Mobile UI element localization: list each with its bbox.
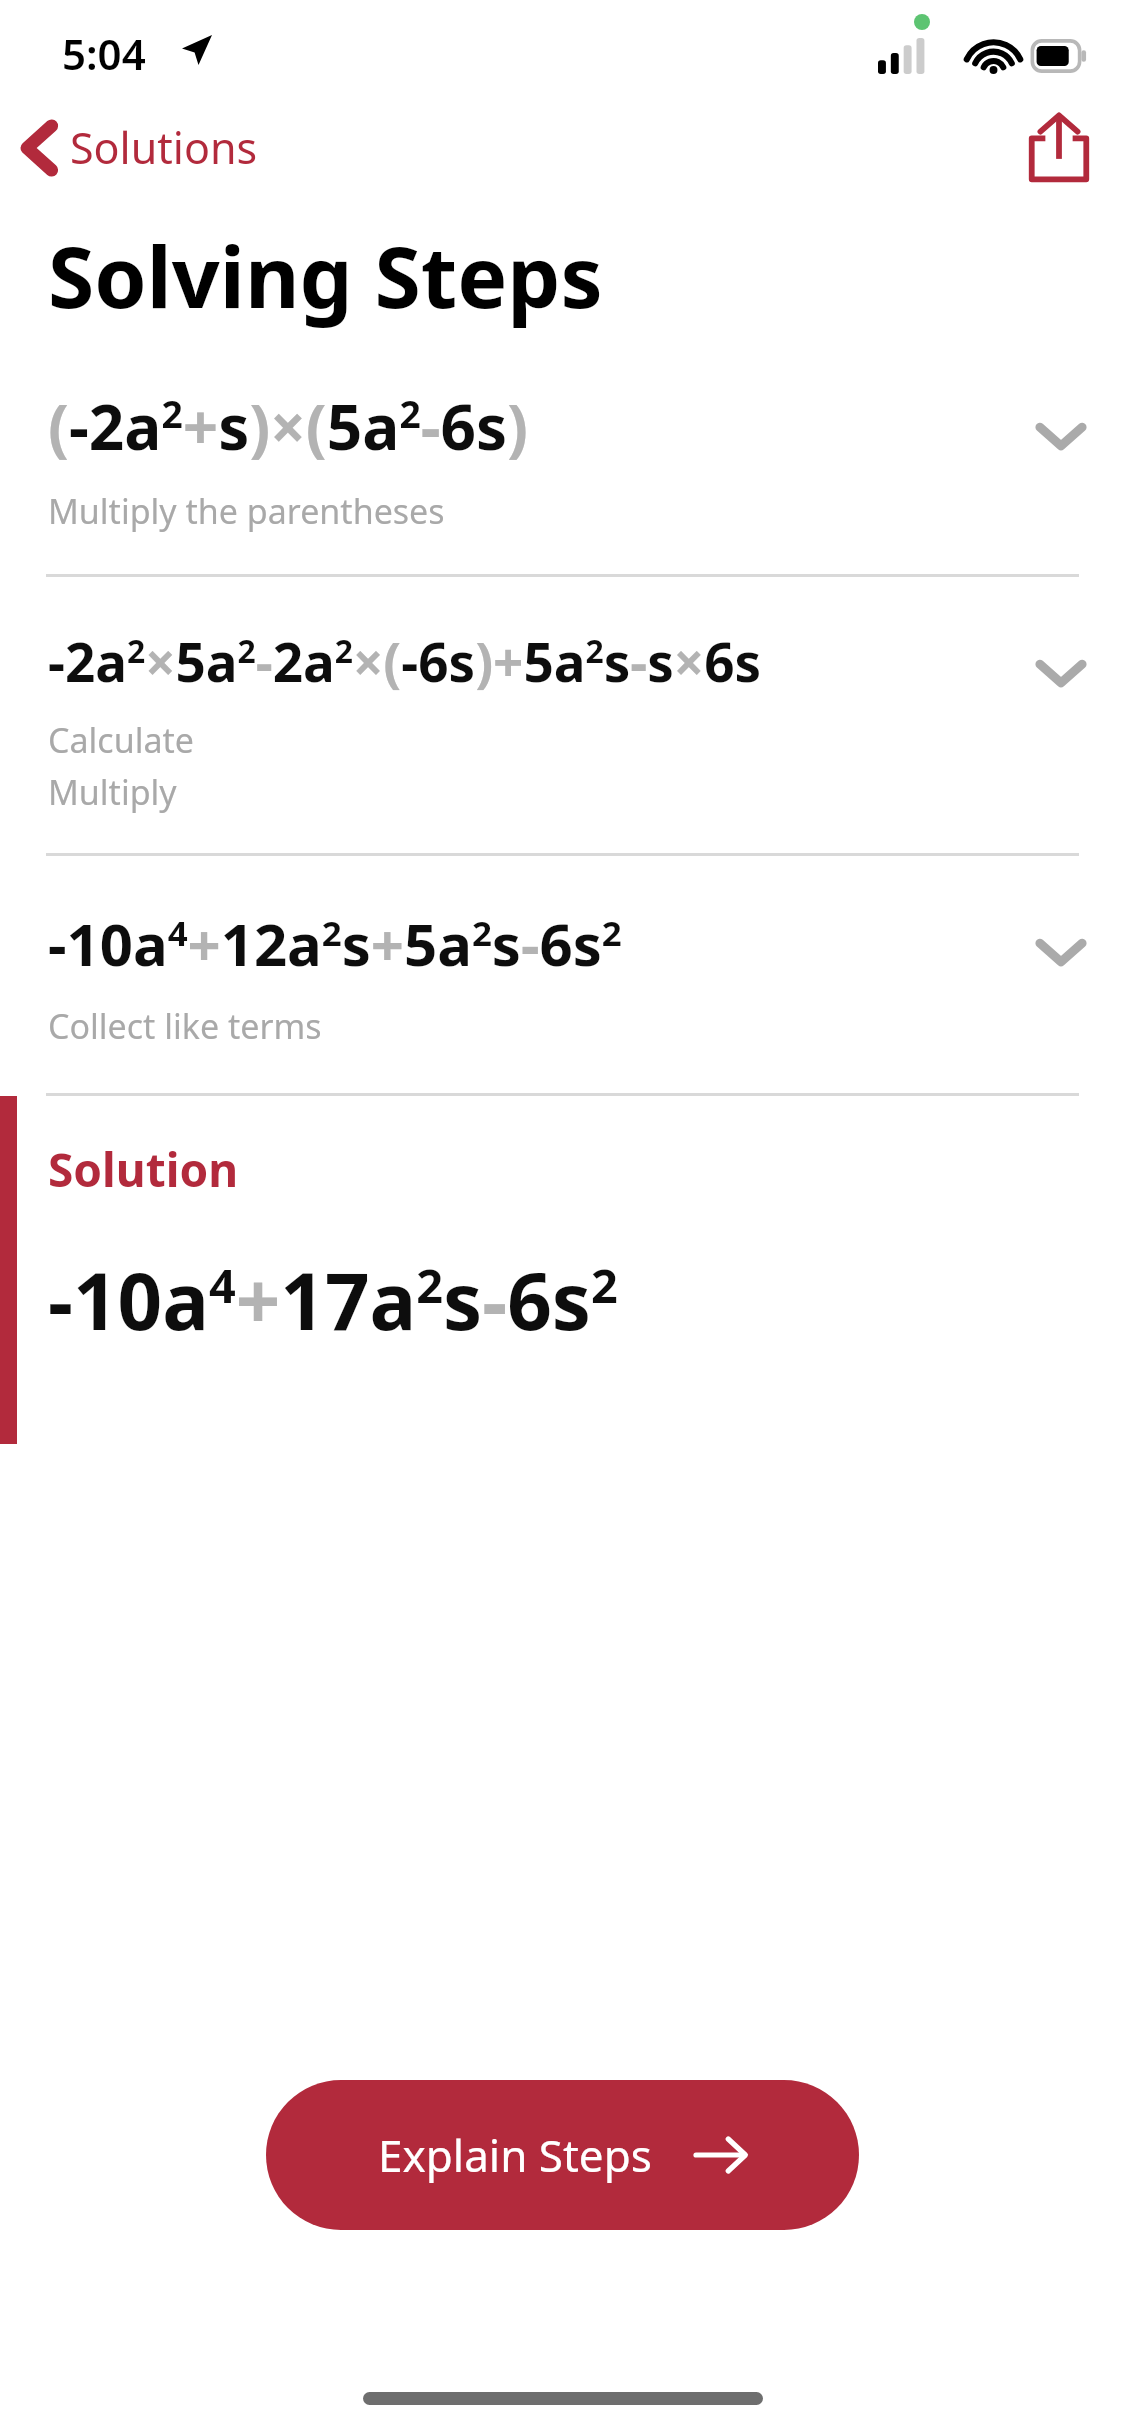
button[interactable]: Explain Steps bbox=[266, 2080, 859, 2230]
staticText: Solving Steps bbox=[48, 218, 603, 332]
staticText: -2a2×5a2-2a2×(-6s)+5a2s-s×6s bbox=[48, 625, 762, 697]
button[interactable]: Share bbox=[1011, 100, 1107, 196]
staticText: Multiply bbox=[48, 769, 177, 815]
button[interactable]: (-2a2+s)×(5a2-6s) bbox=[0, 384, 1125, 534]
staticText: Explain Steps bbox=[378, 2125, 652, 2185]
staticText: Collect like terms bbox=[48, 1003, 322, 1049]
button[interactable]: Expand step bbox=[1013, 388, 1109, 484]
staticText: -10a4+17a2s-6s2 bbox=[48, 1247, 618, 1353]
staticText: 5:04 bbox=[62, 25, 146, 82]
staticText: Calculate bbox=[48, 717, 194, 763]
button[interactable]: -2a2×5a2-2a2×(-6s)+5a2s-s×6s bbox=[0, 577, 1125, 815]
staticText: (-2a2+s)×(5a2-6s) bbox=[48, 384, 529, 468]
staticText: Multiply the parentheses bbox=[48, 488, 445, 534]
staticText: -10a4+12a2s+5a2s-6s2 bbox=[48, 904, 622, 983]
button[interactable]: -10a4+12a2s+5a2s-6s2 bbox=[0, 856, 1125, 1049]
staticText: Solution bbox=[48, 1138, 239, 1201]
staticText: Solutions bbox=[70, 118, 258, 177]
button[interactable]: Expand step bbox=[1013, 904, 1109, 1000]
button[interactable]: Solutions bbox=[14, 106, 268, 189]
button[interactable]: Expand step bbox=[1013, 625, 1109, 721]
